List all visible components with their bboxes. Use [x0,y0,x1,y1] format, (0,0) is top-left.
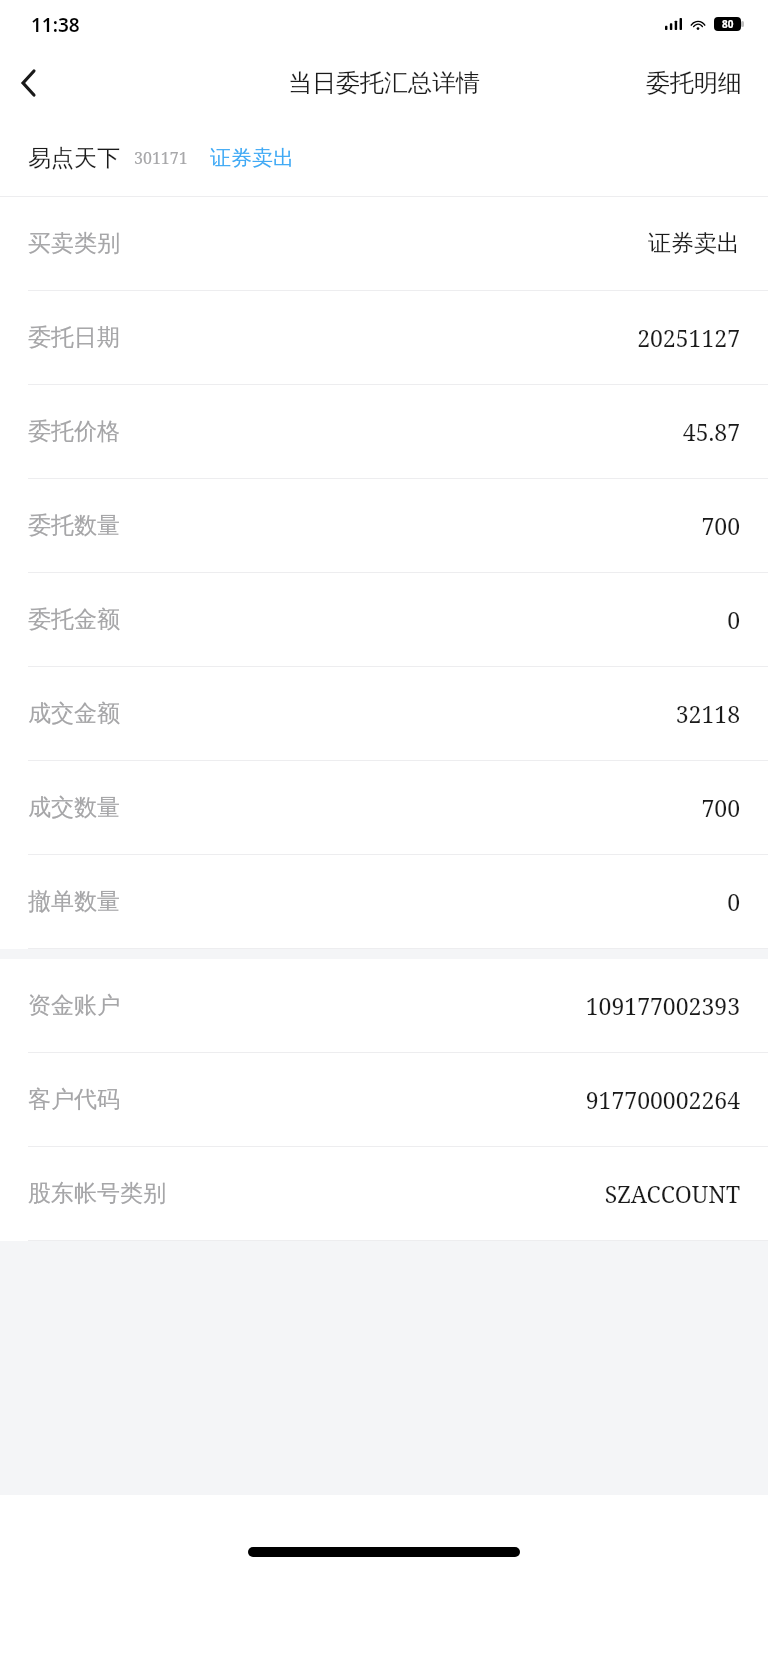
button[interactable]: Back [0,55,56,111]
staticText: 客户代码 [28,1085,120,1114]
staticText: 成交数量 [28,793,120,822]
staticText: 委托明细 [646,68,742,98]
staticText: 当日委托汇总详情 [288,68,480,98]
staticText: 80 [722,17,734,31]
staticText: 证券卖出 [210,145,294,171]
button[interactable]: 委托日期 [0,291,768,384]
button[interactable]: 买卖类别 [0,197,768,290]
staticText: 易点天下 [28,144,120,173]
button[interactable]: 股东帐号类别 [0,1147,768,1240]
button[interactable]: 成交金额 [0,667,768,760]
button[interactable]: 撤单数量 [0,855,768,948]
staticText: 资金账户 [28,991,120,1020]
staticText: 证券卖出 [648,229,740,258]
staticText: 45.87 [682,416,740,447]
staticText: 700 [701,510,740,541]
staticText: 32118 [675,698,740,729]
staticText: 股东帐号类别 [28,1179,166,1208]
staticText: 委托价格 [28,417,120,446]
staticText: 917700002264 [585,1084,740,1115]
staticText: 20251127 [637,322,740,353]
button[interactable]: 委托金额 [0,573,768,666]
staticText: 委托金额 [28,605,120,634]
staticText: 301171 [134,147,188,169]
staticText: 成交金额 [28,699,120,728]
staticText: SZACCOUNT [604,1178,740,1209]
staticText: 买卖类别 [28,229,120,258]
staticText: 0 [727,604,740,635]
staticText: 撤单数量 [28,887,120,916]
staticText: 委托日期 [28,323,120,352]
button[interactable]: 委托数量 [0,479,768,572]
staticText: 700 [701,792,740,823]
staticText: 0 [727,886,740,917]
staticText: 11:38 [31,12,80,38]
staticText: 委托数量 [28,511,120,540]
button[interactable]: 委托价格 [0,385,768,478]
button[interactable]: 成交数量 [0,761,768,854]
button[interactable]: 客户代码 [0,1053,768,1146]
staticText: 109177002393 [585,990,740,1021]
button[interactable]: 资金账户 [0,959,768,1052]
button[interactable]: 委托明细 [620,56,768,110]
